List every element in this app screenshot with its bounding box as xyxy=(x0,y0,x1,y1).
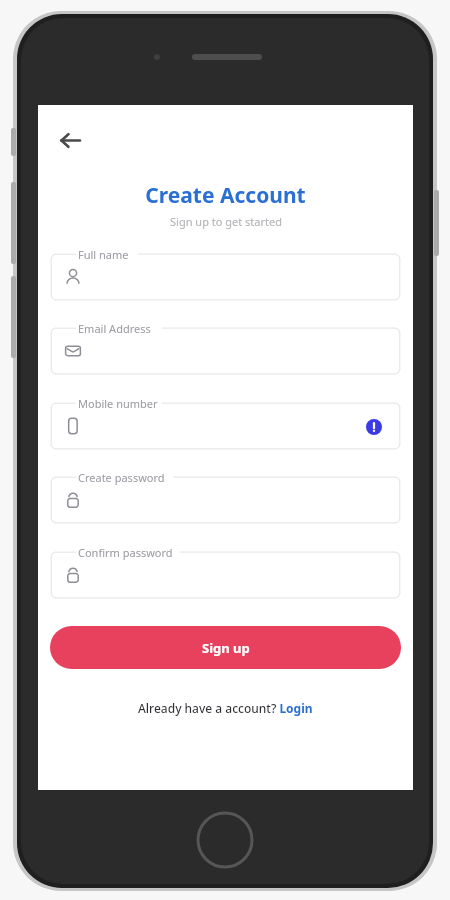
button[interactable]: Confirm password xyxy=(50,551,401,609)
button[interactable]: Mobile number xyxy=(50,402,401,460)
staticText: Create password xyxy=(78,470,165,485)
staticText: Already have a account? Login xyxy=(138,700,313,716)
button[interactable]: Email Address xyxy=(50,327,401,385)
staticText: Sign up to get started xyxy=(170,214,282,229)
staticText: Full name xyxy=(78,247,129,262)
button[interactable]: Back xyxy=(48,118,92,162)
staticText: Email Address xyxy=(78,321,151,336)
button[interactable]: Create password xyxy=(50,476,401,534)
button[interactable]: Already have a account? Login xyxy=(38,694,413,722)
staticText: Confirm password xyxy=(78,545,173,560)
button[interactable]: Full name xyxy=(50,253,401,311)
staticText: Sign up xyxy=(202,639,250,657)
button[interactable]: Sign up xyxy=(50,626,401,669)
staticText: Create Account xyxy=(145,181,306,210)
button[interactable]: Info xyxy=(366,419,382,435)
staticText: Mobile number xyxy=(78,396,158,411)
